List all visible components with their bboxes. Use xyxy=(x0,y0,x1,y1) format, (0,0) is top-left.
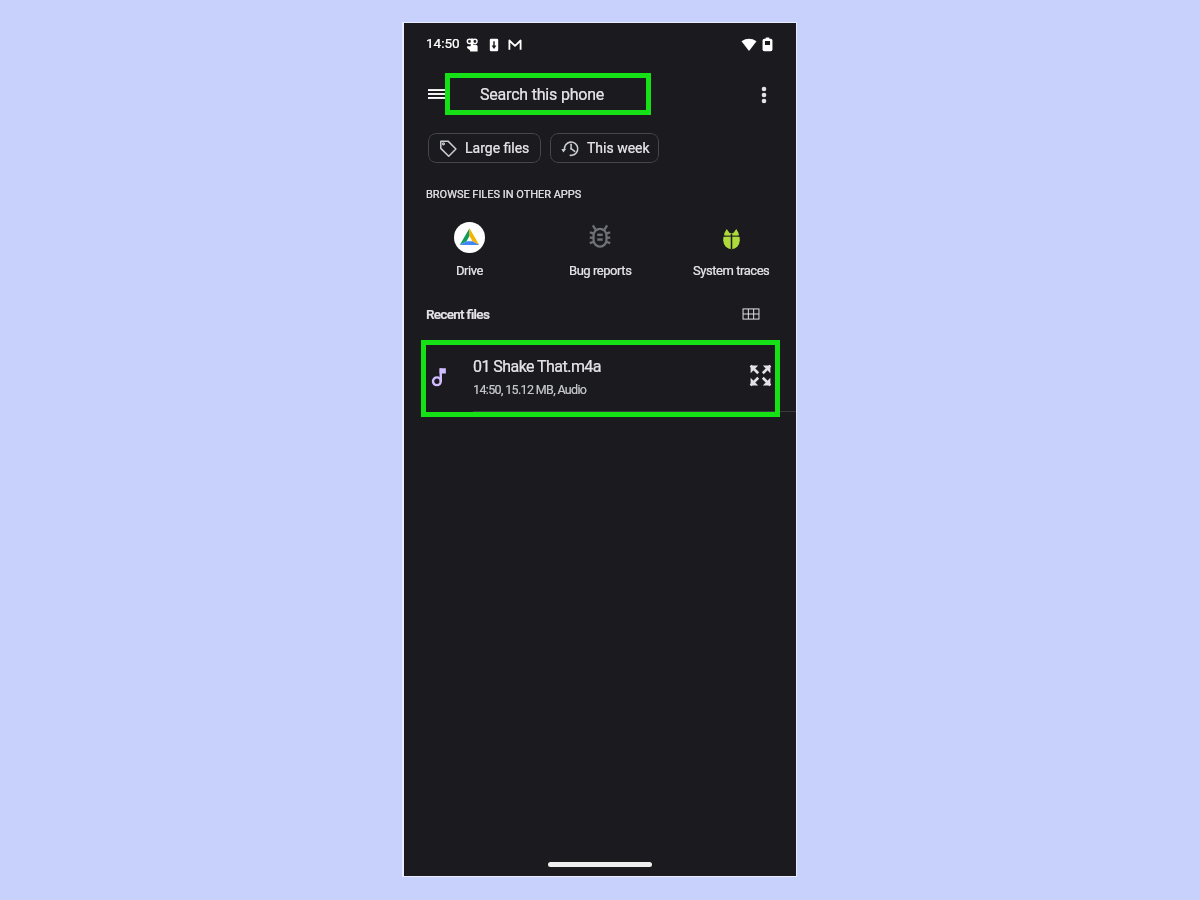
staticText: Large files xyxy=(465,140,530,156)
button[interactable]: Open navigation menu xyxy=(422,79,452,109)
button[interactable]: Large files xyxy=(428,133,541,163)
button[interactable]: Bug reports xyxy=(540,220,660,278)
button[interactable]: More options xyxy=(749,80,779,110)
staticText: Drive xyxy=(456,263,483,278)
staticText: 14:50, 15.12 MB, Audio xyxy=(473,382,587,397)
staticText: System traces xyxy=(693,263,770,278)
button[interactable]: Search this phone xyxy=(445,73,651,115)
button[interactable]: Expand xyxy=(745,360,775,390)
staticText: 14:50 xyxy=(426,35,460,51)
staticText: BROWSE FILES IN OTHER APPS xyxy=(426,188,582,201)
button[interactable]: System traces xyxy=(671,220,791,278)
staticText: Search this phone xyxy=(480,85,605,104)
button[interactable]: Switch to grid view xyxy=(737,300,765,328)
button[interactable]: Drive xyxy=(409,220,529,278)
staticText: Recent files xyxy=(426,306,490,322)
staticText: 01 Shake That.m4a xyxy=(473,357,601,376)
staticText: Bug reports xyxy=(569,263,632,278)
button[interactable]: This week xyxy=(550,133,659,163)
staticText: This week xyxy=(587,140,650,156)
button[interactable]: 01 Shake That.m4a xyxy=(421,340,780,417)
